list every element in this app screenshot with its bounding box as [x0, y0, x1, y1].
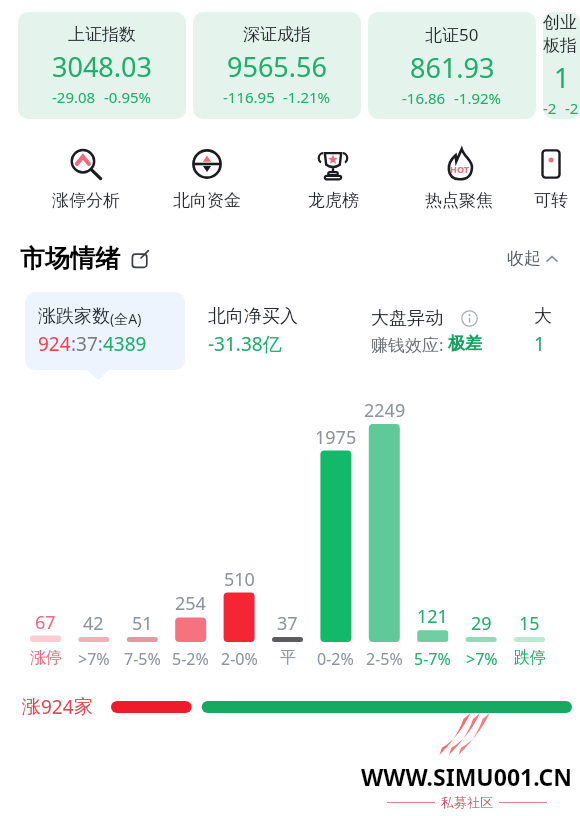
button[interactable]: 北向资金 — [144, 147, 270, 211]
button[interactable]: 龙虎榜 — [270, 147, 396, 211]
staticText: 深证成指 — [243, 24, 311, 45]
staticText: 龙虎榜 — [308, 190, 359, 211]
button[interactable]: 北证50 — [368, 12, 536, 119]
staticText: 北证50 — [425, 23, 479, 46]
staticText: 1 — [534, 331, 545, 357]
staticText: 极差 — [448, 333, 482, 354]
staticText: -16.86 — [402, 88, 446, 108]
staticText: 赚钱效应: — [371, 333, 448, 356]
staticText: 5-7% — [414, 648, 451, 670]
staticText: 上证指数 — [68, 24, 136, 45]
button[interactable]: 大 — [521, 292, 580, 370]
button[interactable]: HOT — [396, 147, 522, 211]
staticText: 热点聚焦 — [425, 190, 493, 211]
staticText: 924 — [38, 331, 71, 357]
staticText: 51 — [132, 611, 153, 636]
staticText: 2249 — [364, 398, 406, 423]
staticText: HOT — [450, 163, 469, 175]
staticText: 254 — [175, 591, 206, 616]
staticText: 收起 — [507, 248, 541, 269]
staticText: 121 — [417, 604, 448, 629]
staticText: 9565.56 — [227, 48, 327, 85]
staticText: 2-0% — [221, 648, 258, 670]
staticText: 7-5% — [124, 648, 161, 670]
staticText: 涨停分析 — [52, 190, 120, 211]
staticText: 大 — [534, 305, 552, 328]
staticText: 0-2% — [317, 648, 354, 670]
staticText: 创业板指 — [543, 12, 580, 56]
staticText: 平 — [280, 648, 296, 668]
staticText: 跌停 — [514, 648, 546, 668]
staticText: 北向净买入 — [208, 305, 298, 328]
button[interactable]: Collapse — [507, 248, 558, 269]
staticText: -116.95 — [223, 87, 275, 107]
staticText: 924 — [41, 694, 74, 720]
button[interactable]: 涨跌家数 — [25, 292, 185, 370]
staticText: 37 — [277, 611, 298, 636]
staticText: 大盘异动 — [371, 307, 443, 330]
staticText: >7% — [466, 648, 498, 670]
button[interactable]: 可转 — [522, 147, 580, 211]
staticText: 67 — [35, 610, 56, 635]
staticText: -0.95% — [104, 87, 152, 107]
staticText: 市场情绪 — [20, 243, 120, 274]
staticText: 可转 — [534, 190, 568, 211]
staticText: >7% — [78, 648, 110, 670]
staticText: -1.92% — [454, 88, 502, 108]
button[interactable]: 创业板指 — [543, 12, 580, 119]
button[interactable]: 上证指数 — [18, 12, 186, 119]
staticText: 861.93 — [410, 49, 495, 86]
button[interactable]: 北向净买入 — [195, 292, 348, 370]
staticText: 涨停 — [30, 648, 62, 668]
staticText: 家 — [74, 695, 93, 719]
staticText: 涨跌家数 — [38, 305, 110, 328]
staticText: 3048.03 — [52, 48, 152, 85]
staticText: 15 — [519, 611, 540, 636]
staticText: 29 — [471, 611, 492, 636]
staticText: 4389 — [103, 331, 147, 357]
staticText: 1975 — [315, 425, 357, 450]
staticText: 42 — [83, 611, 104, 636]
staticText: 2-5% — [366, 648, 403, 670]
button[interactable]: 涨停分析 — [28, 147, 144, 211]
button[interactable]: 深证成指 — [193, 12, 361, 119]
staticText: -2 — [543, 98, 557, 118]
button[interactable]: 大盘异动 — [358, 292, 511, 370]
staticText: 510 — [224, 567, 255, 592]
staticText: :37: — [71, 331, 103, 357]
staticText: 1 — [554, 59, 570, 96]
staticText: -31.38亿 — [208, 331, 282, 357]
staticText: 涨 — [22, 695, 41, 719]
staticText: (全A) — [110, 309, 142, 328]
staticText: -2% — [565, 98, 580, 119]
staticText: WWW.SIMU001.CN — [361, 761, 572, 792]
button[interactable]: Share — [130, 249, 150, 269]
staticText: -1.21% — [283, 87, 331, 107]
staticText: 北向资金 — [173, 190, 241, 211]
staticText: 5-2% — [172, 648, 209, 670]
staticText: 私募社区 — [441, 794, 493, 810]
staticText: -29.08 — [52, 87, 96, 107]
